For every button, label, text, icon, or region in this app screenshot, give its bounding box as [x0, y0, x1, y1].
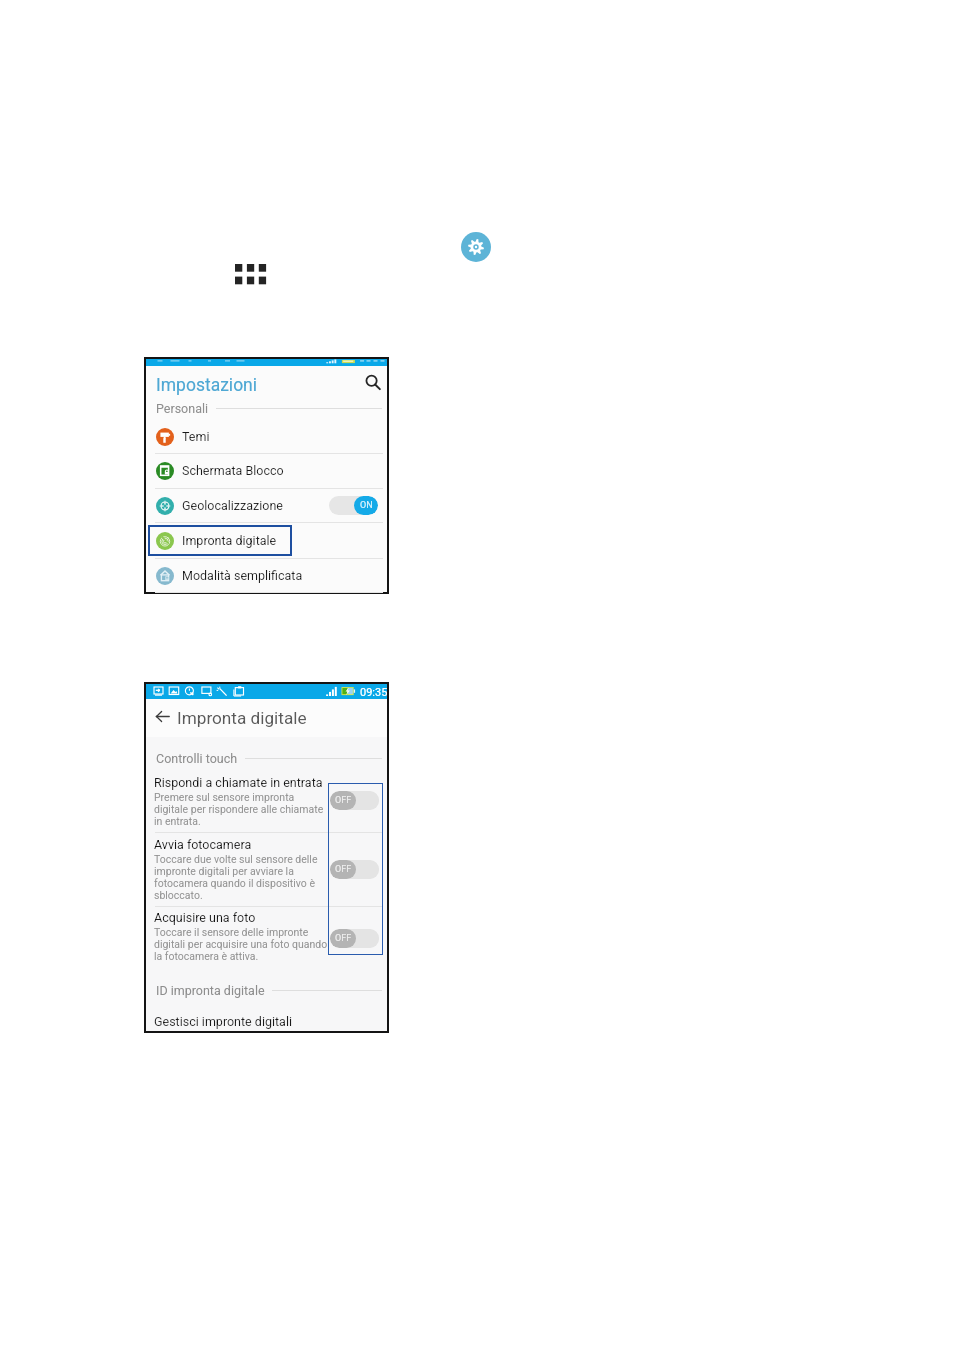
staticText: Controlli touch [156, 751, 238, 766]
staticText: Personali [156, 401, 209, 416]
staticText: Schermata Blocco [182, 463, 284, 478]
staticText: Geolocalizzazione [182, 498, 283, 513]
button[interactable]: Settings [461, 232, 491, 262]
button[interactable]: Impronta digitale [146, 524, 387, 557]
staticText: Temi [182, 429, 210, 444]
button[interactable]: ON [329, 496, 378, 515]
button[interactable] [146, 906, 387, 966]
staticText: la fotocamera è attiva. [154, 950, 259, 962]
staticText: digitale per rispondere alle chiamate [154, 803, 324, 815]
staticText: Impronta digitale [177, 708, 307, 728]
button[interactable]: OFF [330, 860, 379, 879]
staticText: Premere sul sensore impronta [154, 791, 295, 803]
staticText: Toccare due volte sul sensore delle [154, 853, 318, 865]
staticText: ID impronta digitale [156, 983, 265, 998]
button[interactable]: Gestisci impronte digitali [146, 1008, 387, 1034]
staticText: ON [360, 500, 373, 511]
button[interactable] [146, 771, 387, 828]
staticText: OFF [335, 795, 352, 806]
button[interactable]: Schermata Blocco [146, 454, 387, 487]
staticText: Impostazioni [156, 375, 258, 396]
staticText: Toccare il sensore delle impronte [154, 926, 309, 938]
button[interactable]: Back [155, 709, 170, 724]
button[interactable]: OFF [330, 791, 379, 810]
button[interactable]: All apps [235, 264, 266, 284]
staticText: 09:35 [360, 686, 388, 699]
button[interactable] [146, 833, 387, 905]
staticText: in entrata. [154, 815, 201, 827]
staticText: OFF [335, 933, 352, 944]
staticText: Gestisci impronte digitali [154, 1014, 292, 1029]
staticText: impronte digitali per avviare la [154, 865, 294, 877]
staticText: OFF [335, 864, 352, 875]
staticText: Acquisire una foto [154, 910, 256, 925]
staticText: sbloccato. [154, 889, 203, 901]
button[interactable]: Modalità semplificata [146, 559, 387, 592]
button[interactable]: OFF [330, 929, 379, 948]
button[interactable]: Search [364, 374, 382, 392]
staticText: digitali per acquisire una foto quando [154, 938, 328, 950]
button[interactable]: Geolocalizzazione [146, 489, 387, 522]
staticText: Avvia fotocamera [154, 837, 252, 852]
staticText: fotocamera quando il dispositivo è [154, 877, 316, 889]
staticText: Impronta digitale [182, 533, 277, 548]
button[interactable]: Temi [146, 420, 387, 453]
staticText: Modalità semplificata [182, 568, 303, 583]
staticText: Rispondi a chiamate in entrata [154, 775, 323, 790]
